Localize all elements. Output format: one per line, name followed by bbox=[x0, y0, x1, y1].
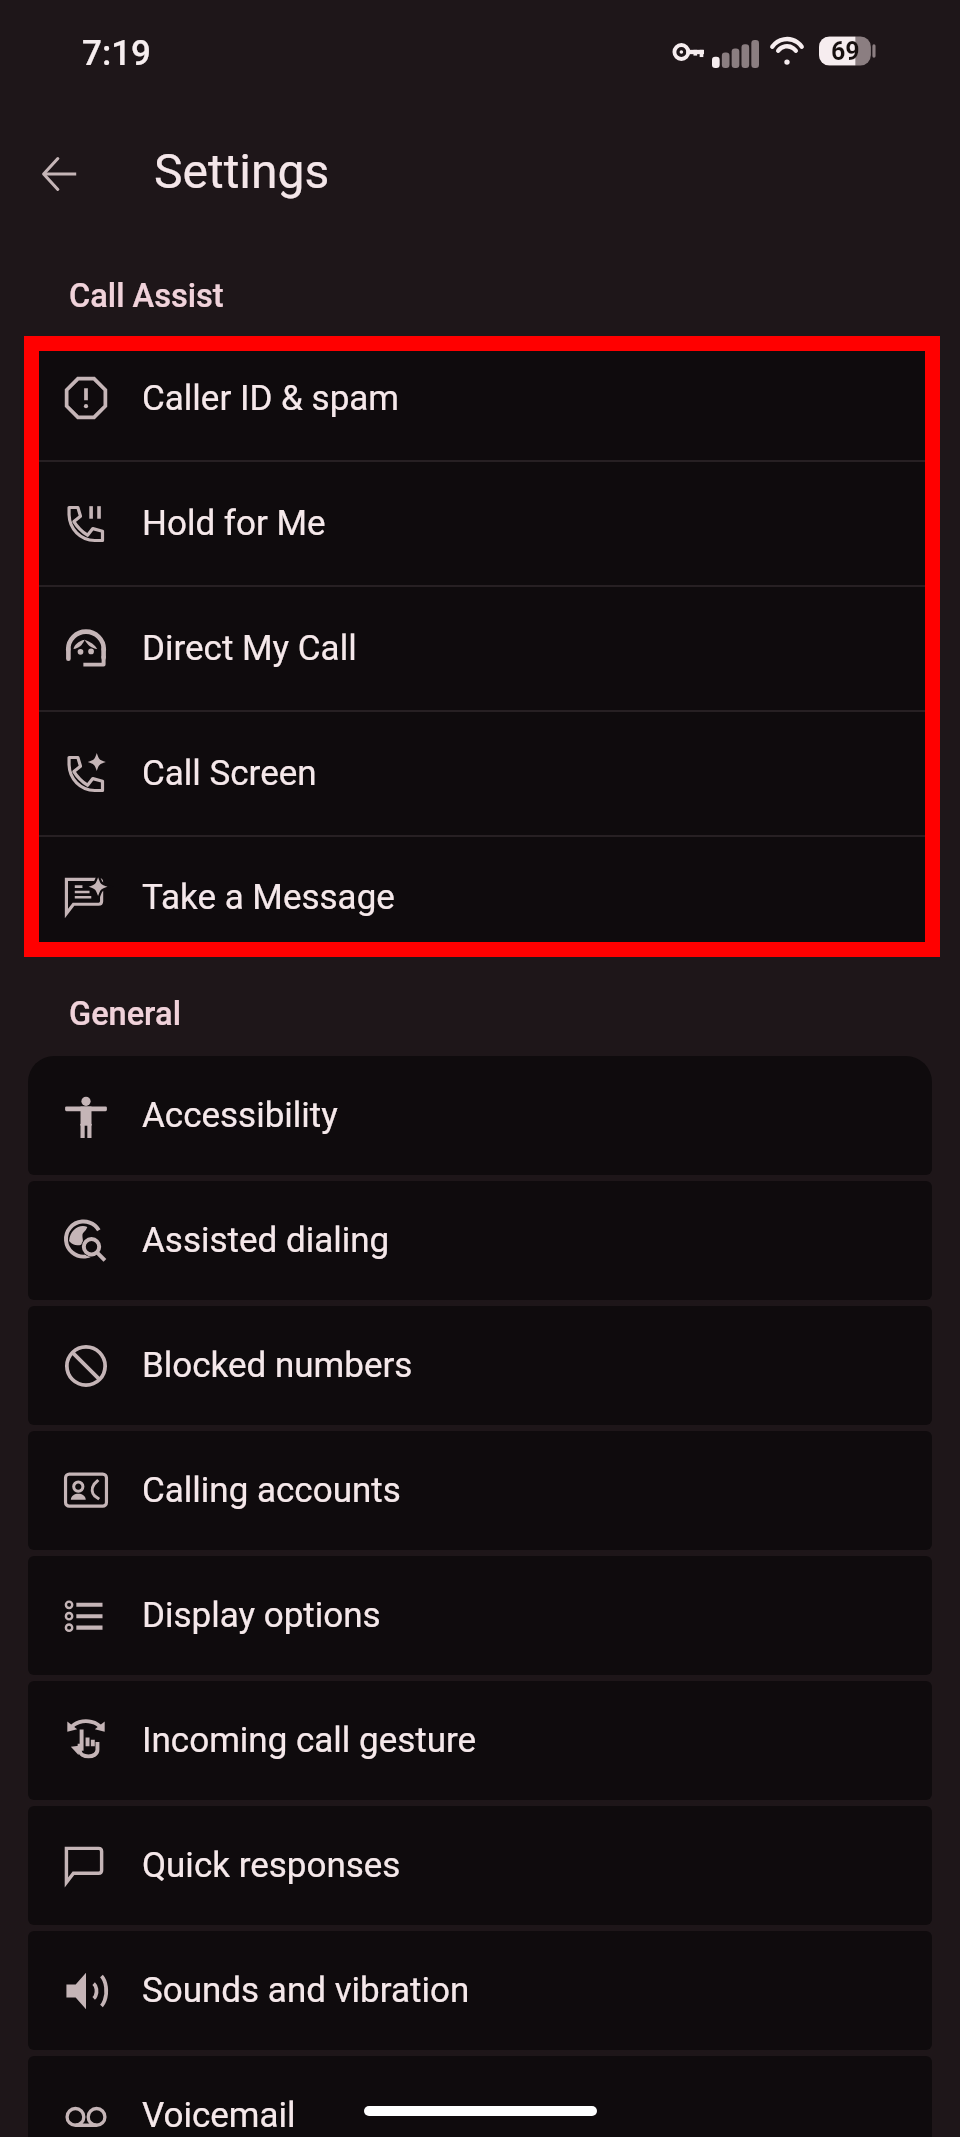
staticText: Display options bbox=[142, 1595, 381, 1636]
button[interactable]: Caller ID & spam bbox=[26, 336, 934, 460]
staticText: Direct My Call bbox=[142, 628, 357, 669]
staticText: Incoming call gesture bbox=[142, 1720, 477, 1761]
button[interactable]: Direct My Call bbox=[26, 587, 934, 710]
button[interactable]: Hold for Me bbox=[26, 462, 934, 585]
staticText: Calling accounts bbox=[142, 1470, 401, 1511]
staticText: Sounds and vibration bbox=[142, 1970, 470, 2011]
button[interactable]: Voicemail bbox=[28, 2056, 932, 2137]
staticText: Call Screen bbox=[142, 753, 317, 794]
staticText: 7:19 bbox=[82, 33, 151, 74]
button[interactable]: Call Screen bbox=[26, 712, 934, 835]
button[interactable]: Sounds and vibration bbox=[28, 1931, 932, 2050]
staticText: Take a Message bbox=[142, 877, 395, 918]
staticText: Assisted dialing bbox=[142, 1220, 390, 1261]
button[interactable]: Blocked numbers bbox=[28, 1306, 932, 1425]
staticText: Settings bbox=[154, 143, 330, 199]
staticText: Blocked numbers bbox=[142, 1345, 413, 1386]
button[interactable]: Incoming call gesture bbox=[28, 1681, 932, 1800]
button[interactable]: Back bbox=[26, 140, 94, 208]
staticText: Quick responses bbox=[142, 1845, 401, 1886]
button[interactable]: Calling accounts bbox=[28, 1431, 932, 1550]
button[interactable]: Quick responses bbox=[28, 1806, 932, 1925]
staticText: Call Assist bbox=[69, 277, 224, 315]
button[interactable]: Assisted dialing bbox=[28, 1181, 932, 1300]
button[interactable]: Display options bbox=[28, 1556, 932, 1675]
staticText: 69 bbox=[831, 37, 860, 66]
staticText: Caller ID & spam bbox=[142, 378, 400, 419]
staticText: General bbox=[69, 995, 181, 1033]
button[interactable]: Accessibility bbox=[28, 1056, 932, 1175]
staticText: Hold for Me bbox=[142, 503, 326, 544]
button[interactable]: Take a Message bbox=[26, 837, 934, 957]
staticText: Voicemail bbox=[142, 2095, 296, 2136]
staticText: Accessibility bbox=[142, 1095, 338, 1136]
